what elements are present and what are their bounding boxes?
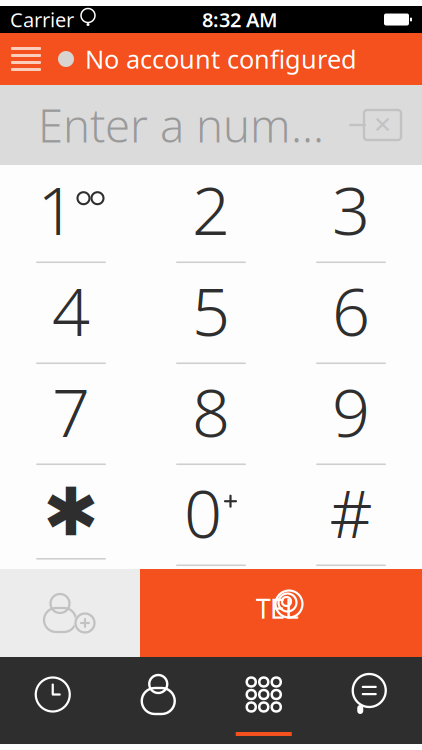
staticText: ✕ [373, 112, 392, 138]
staticText: No account configured [85, 42, 357, 76]
staticText: 5 [192, 266, 230, 354]
button[interactable]: Contacts [105, 657, 211, 744]
button[interactable]: 5 [141, 266, 281, 367]
staticText: 6 [332, 266, 370, 354]
button[interactable]: 9 [281, 367, 421, 468]
button[interactable]: Add contact [0, 569, 140, 657]
staticText: ℡ [255, 580, 298, 654]
staticText: 9 [332, 367, 370, 455]
staticText: 1 [37, 165, 75, 253]
button[interactable]: 3 [281, 165, 421, 266]
button[interactable]: ✱ [1, 468, 141, 569]
staticText: Carrier [10, 6, 74, 33]
button[interactable]: Menu [0, 33, 52, 85]
button[interactable]: Call [140, 569, 422, 657]
staticText: ✱ [43, 474, 99, 550]
staticText: 8 [192, 367, 230, 455]
staticText: # [329, 468, 372, 556]
staticText: 4 [52, 266, 90, 354]
button[interactable]: Keypad [211, 657, 316, 744]
button[interactable]: # [281, 468, 421, 569]
button[interactable]: 1 [1, 165, 141, 266]
button[interactable]: Messages [316, 657, 422, 744]
staticText: Enter a num... [38, 95, 324, 155]
button[interactable]: 8 [141, 367, 281, 468]
button[interactable]: 6 [281, 266, 421, 367]
button[interactable]: 0 [141, 468, 281, 569]
staticText: 7 [52, 367, 90, 455]
staticText: 8:32 AM [202, 6, 278, 33]
button[interactable]: Recents [0, 657, 105, 744]
button[interactable]: 7 [1, 367, 141, 468]
staticText: 3 [332, 165, 370, 253]
staticText: 0 [184, 468, 222, 556]
button[interactable]: 2 [141, 165, 281, 266]
button[interactable]: No account configured [52, 33, 363, 85]
button[interactable]: 4 [1, 266, 141, 367]
staticText: 2 [192, 165, 230, 253]
button[interactable]: Delete [340, 95, 410, 155]
